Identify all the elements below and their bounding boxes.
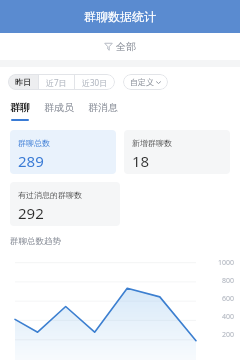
staticText: 近30日 (82, 77, 108, 88)
button[interactable]: 自定义 (123, 74, 168, 90)
staticText: 自定义 (130, 77, 154, 87)
staticText: 600 (221, 294, 234, 304)
staticText: 群聊数据统计 (84, 9, 156, 24)
button[interactable]: 群成员 (44, 97, 74, 121)
staticText: 昨日 (15, 77, 31, 87)
button[interactable]: 昨日 (8, 74, 38, 90)
staticText: 新增群聊数 (132, 138, 172, 148)
staticText: 289 (18, 151, 44, 171)
staticText: 292 (18, 203, 44, 223)
button[interactable]: 有过消息的群聊数 (10, 182, 120, 226)
button[interactable]: 群消息 (88, 97, 118, 121)
button[interactable]: 近7日 (39, 74, 74, 90)
staticText: 群聊总数趋势 (10, 236, 61, 247)
staticText: 18 (132, 151, 150, 171)
button[interactable]: 群聊总数 (10, 130, 116, 174)
staticText: 全部 (116, 40, 136, 53)
staticText: 近7日 (46, 77, 67, 88)
staticText: 200 (221, 330, 234, 340)
staticText: 1000 (217, 258, 234, 268)
button[interactable]: 近30日 (75, 74, 115, 90)
staticText: 有过消息的群聊数 (18, 190, 82, 200)
button[interactable]: 全部 (0, 33, 240, 60)
staticText: 群成员 (44, 101, 74, 114)
staticText: 群聊总数 (18, 138, 50, 148)
staticText: 群聊 (10, 101, 30, 114)
staticText: 400 (221, 312, 234, 322)
button[interactable]: 群聊 (10, 97, 30, 121)
button[interactable]: 新增群聊数 (124, 130, 230, 174)
staticText: 800 (221, 276, 234, 286)
staticText: 群消息 (88, 101, 118, 114)
